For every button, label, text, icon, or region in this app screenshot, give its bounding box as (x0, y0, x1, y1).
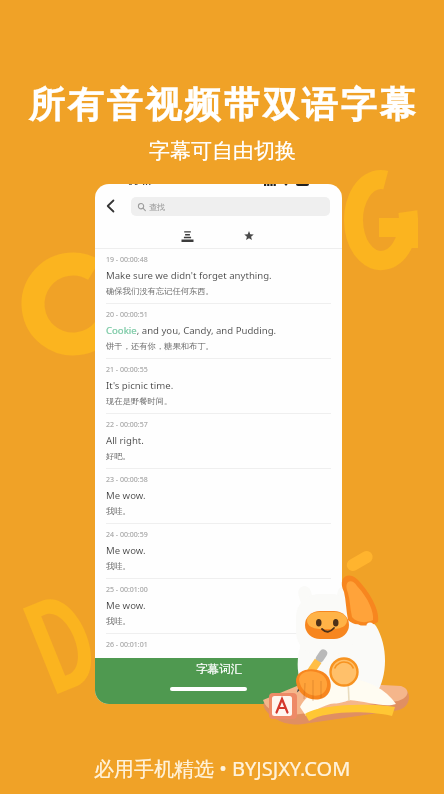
button[interactable]: 22 - 00:00:57 (95, 414, 342, 469)
staticText: 21 - 00:00:55 (106, 365, 148, 375)
staticText: 我哇。 (106, 506, 131, 516)
button[interactable]: 字幕词汇 (95, 658, 342, 704)
button[interactable]: 查找 (131, 197, 330, 216)
staticText: 饼干，还有你，糖果和布丁。 (106, 341, 214, 351)
staticText: 22 - 00:00:57 (106, 420, 148, 430)
staticText: It's picnic time. (106, 379, 174, 392)
staticText: 所有音视频带双语字幕 (27, 82, 417, 127)
staticText: 25 - 00:01:00 (106, 585, 148, 595)
button[interactable]: Back (100, 196, 120, 216)
staticText: 字幕词汇 (196, 662, 242, 676)
staticText: 20 - 00:00:51 (106, 310, 148, 320)
staticText: Make sure we didn't forget anything. (106, 269, 272, 282)
staticText: 现在是野餐时间。 (106, 396, 173, 406)
button[interactable]: 24 - 00:00:59 (95, 524, 342, 579)
button[interactable]: 25 - 00:01:00 (95, 579, 342, 634)
button[interactable]: 20 - 00:00:51 (95, 304, 342, 359)
staticText: 我哇。 (106, 616, 131, 626)
staticText: 确保我们没有忘记任何东西。 (106, 286, 214, 296)
staticText: Me wow. (106, 544, 146, 557)
staticText: 24 - 00:00:59 (106, 530, 148, 540)
staticText: 19 - 00:00:48 (106, 255, 148, 265)
staticText: 好吧。 (106, 451, 131, 461)
button[interactable]: 19 - 00:00:48 (95, 249, 342, 304)
staticText: Cookie, and you, Candy, and Pudding. (106, 324, 277, 337)
staticText: Me wow. (106, 489, 146, 502)
staticText: 11:06 (128, 184, 154, 185)
staticText: 我哇。 (106, 561, 131, 571)
button[interactable]: 23 - 00:00:58 (95, 469, 342, 524)
button[interactable]: Favorites (229, 223, 269, 248)
staticText: All right. (106, 434, 144, 447)
button[interactable]: 21 - 00:00:55 (95, 359, 342, 414)
button[interactable]: Subtitles (167, 223, 207, 248)
staticText: 必用手机精选 • BYJSJXY.COM (94, 755, 351, 782)
staticText: 26 - 00:01:01 (106, 640, 148, 650)
staticText: 查找 (149, 202, 165, 212)
staticText: 字幕可自由切换 (149, 138, 296, 164)
staticText: Me wow. (106, 599, 146, 612)
staticText: 23 - 00:00:58 (106, 475, 148, 485)
